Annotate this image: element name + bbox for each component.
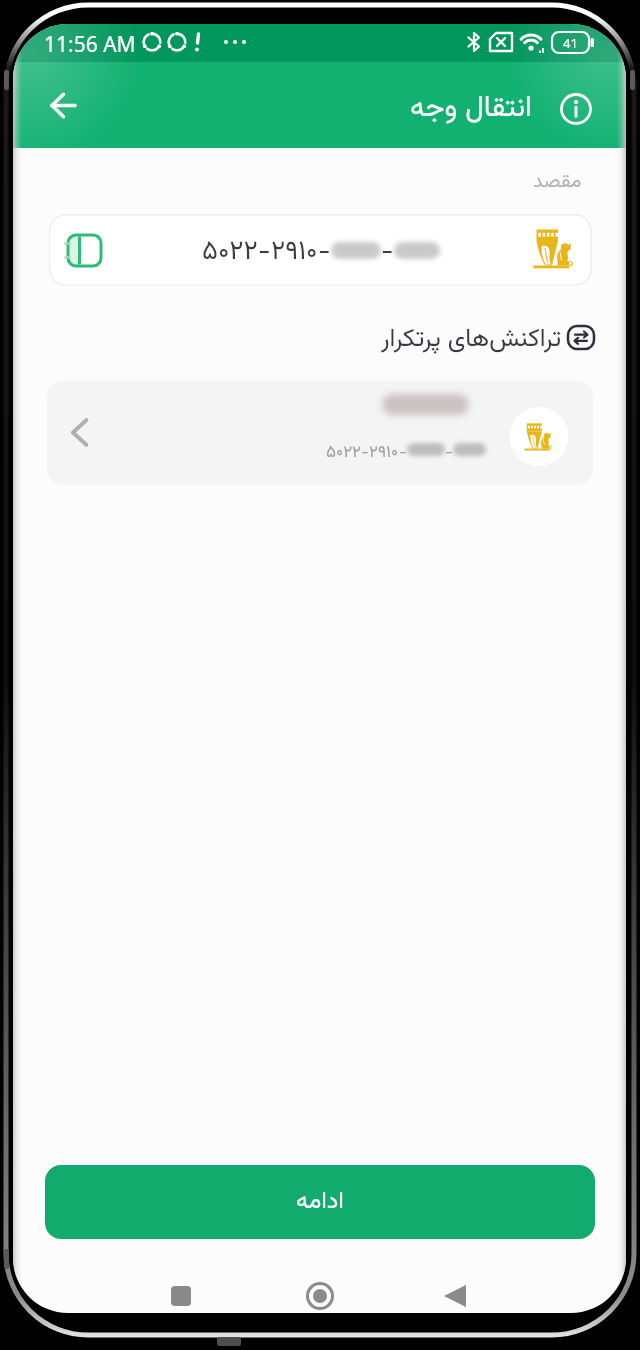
staticText: ۵۰۲۲ [202, 231, 258, 269]
button[interactable] [559, 92, 593, 126]
staticText: ۲۹۱۰ [271, 231, 318, 269]
staticText: ۲۹۱۰ [369, 440, 399, 458]
staticText: ادامه [296, 1183, 344, 1221]
staticText: مقصد [533, 166, 582, 196]
button[interactable]: ۵۰۲۲ [47, 381, 593, 485]
button[interactable] [161, 1276, 201, 1313]
staticText: ۵۰۲۲ [326, 440, 361, 458]
staticText: 41 [563, 34, 578, 52]
button[interactable]: ادامه [45, 1165, 595, 1239]
button[interactable] [300, 1276, 340, 1313]
staticText: 11:56 AM [44, 30, 136, 58]
staticText: - [318, 231, 331, 269]
staticText: - [361, 440, 369, 458]
staticText: - [399, 440, 407, 458]
button[interactable] [43, 86, 93, 136]
staticText: - [381, 231, 394, 269]
button[interactable] [435, 1276, 475, 1313]
staticText: - [445, 440, 453, 458]
button[interactable]: ۵۰۲۲ [49, 214, 592, 286]
staticText: انتقال وجه [410, 86, 532, 130]
staticText: تراکنش‌های پرتکرار [381, 320, 562, 356]
staticText: - [258, 231, 271, 269]
